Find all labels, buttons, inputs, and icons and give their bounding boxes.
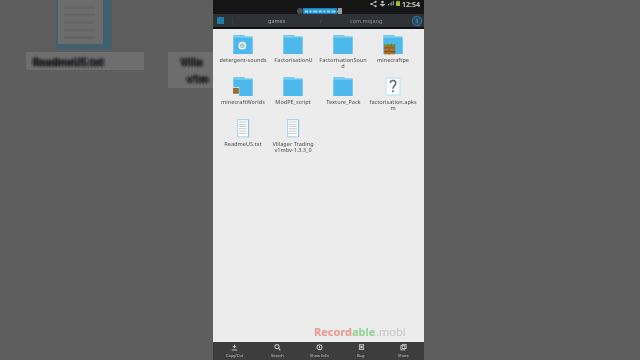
staticText: Villa — [182, 56, 204, 70]
staticText: v1m — [190, 74, 212, 88]
staticText: Villa — [180, 54, 202, 68]
staticText: v1m — [189, 73, 211, 87]
staticText: v1m — [187, 75, 209, 89]
staticText: v1m — [190, 72, 212, 86]
staticText: ReadmeUS.txt — [31, 56, 102, 70]
staticText: ReadmeUS.txt — [32, 55, 103, 69]
staticText: Villager Trading v1mbv-1.3.3_0 — [272, 140, 314, 153]
button[interactable]: Copy/Cut — [213, 342, 256, 360]
staticText: FactorisationSoun d — [319, 56, 367, 69]
staticText: Villa — [178, 53, 200, 67]
staticText: ReadmeUS.txt — [31, 55, 102, 69]
button[interactable]: Show Info — [298, 342, 340, 360]
staticText: v1m — [185, 73, 207, 87]
staticText: factorisation.apks m — [369, 98, 417, 111]
staticText: ReadmeUS.txt — [30, 53, 101, 67]
staticText: .mobi — [376, 324, 406, 339]
staticText: Villa — [184, 57, 206, 71]
staticText: ReadmeUS.txt — [33, 53, 104, 67]
staticText: v1m — [187, 70, 209, 84]
staticText: Villa — [181, 58, 203, 72]
staticText: ReadmeUS.txt — [34, 54, 105, 68]
staticText: Villa — [179, 54, 201, 68]
staticText: Show Info — [310, 353, 329, 358]
staticText: ReadmeUS.txt — [35, 54, 106, 68]
staticText: v1m — [184, 70, 206, 84]
staticText: v1m — [188, 73, 210, 87]
button[interactable]: Search — [256, 342, 298, 360]
staticText: / — [320, 17, 323, 24]
button[interactable]: Share — [382, 342, 424, 360]
staticText: ReadmeUS.txt — [35, 55, 106, 69]
staticText: ReadmeUS.txt — [36, 55, 107, 69]
staticText: able — [352, 324, 376, 339]
staticText: 12:54 — [402, 0, 420, 10]
button[interactable]: FactorisationSoun d — [318, 34, 368, 76]
staticText: ReadmeUS.txt — [36, 57, 107, 71]
staticText: v1m — [187, 69, 209, 83]
staticText: v1m — [187, 72, 209, 86]
staticText: Villa — [181, 53, 203, 67]
staticText: ReadmeUS.txt — [32, 56, 103, 70]
staticText: Villa — [181, 56, 203, 70]
button[interactable]: factorisation.apks m — [368, 76, 418, 118]
staticText: v1m — [185, 72, 207, 86]
staticText: minecraftWorlds — [221, 98, 265, 105]
staticText: ReadmeUS.txt — [33, 57, 104, 71]
staticText: Villa — [182, 54, 204, 68]
staticText: Share — [398, 353, 409, 358]
button[interactable]: Villager Trading v1mbv-1.3.3_0 — [268, 118, 318, 160]
staticText: Search — [271, 353, 284, 358]
staticText: minecraftpe — [377, 56, 409, 63]
staticText: Record — [314, 324, 352, 339]
staticText: Villa — [181, 52, 203, 66]
staticText: v1m — [184, 74, 206, 88]
staticText: v1m — [187, 71, 209, 85]
staticText: Villa — [183, 55, 205, 69]
staticText: Bug — [357, 353, 365, 358]
button[interactable]: Bug — [340, 342, 382, 360]
staticText: FactorisationU — [274, 56, 313, 63]
staticText: ReadmeUS.txt — [32, 54, 103, 68]
staticText: Villa — [183, 54, 205, 68]
button[interactable]: ModPE_script — [268, 76, 318, 118]
staticText: Copy/Cut — [226, 353, 244, 358]
staticText: ReadmeUS.txt — [34, 56, 105, 70]
staticText: Villa — [178, 57, 200, 71]
button[interactable]: FactorisationU — [268, 34, 318, 76]
staticText: Villa — [178, 55, 200, 69]
staticText: ReadmeUS.txt — [36, 53, 107, 67]
staticText: Texture_Pack — [326, 98, 361, 105]
button[interactable]: games — [234, 14, 320, 27]
staticText: ReadmeUS.txt — [34, 55, 105, 69]
staticText: Villa — [182, 55, 204, 69]
staticText: ReadmeUS.txt — [31, 54, 102, 68]
staticText: v1m — [186, 73, 208, 87]
staticText: Villa — [183, 56, 205, 70]
staticText: ReadmeUS.txt — [224, 140, 262, 147]
button[interactable]: Storage — [411, 15, 423, 27]
staticText: Villa — [181, 57, 203, 71]
button[interactable]: ReadmeUS.txt — [217, 118, 268, 160]
button[interactable]: Texture_Pack — [318, 76, 368, 118]
button[interactable]: minecraftpe — [368, 34, 418, 76]
button[interactable]: detergent-sounds — [217, 34, 268, 76]
staticText: ModPE_script — [275, 98, 311, 105]
staticText: Villa — [181, 55, 203, 69]
button[interactable]: com.mojang — [323, 14, 410, 27]
staticText: v1m — [184, 72, 206, 86]
staticText: v1m — [186, 71, 208, 85]
staticText: v1m — [188, 72, 210, 86]
button[interactable]: minecraftWorlds — [217, 76, 268, 118]
staticText: ReadmeUS.txt — [33, 56, 104, 70]
staticText: v1m — [189, 71, 211, 85]
staticText: ReadmeUS.txt — [30, 55, 101, 69]
staticText: v1m — [188, 71, 210, 85]
staticText: games — [268, 17, 286, 24]
staticText: detergent-sounds — [219, 56, 267, 63]
staticText: v1m — [190, 70, 212, 84]
staticText: ReadmeUS.txt — [33, 55, 104, 69]
staticText: Villa — [184, 55, 206, 69]
staticText: ReadmeUS.txt — [33, 58, 104, 72]
